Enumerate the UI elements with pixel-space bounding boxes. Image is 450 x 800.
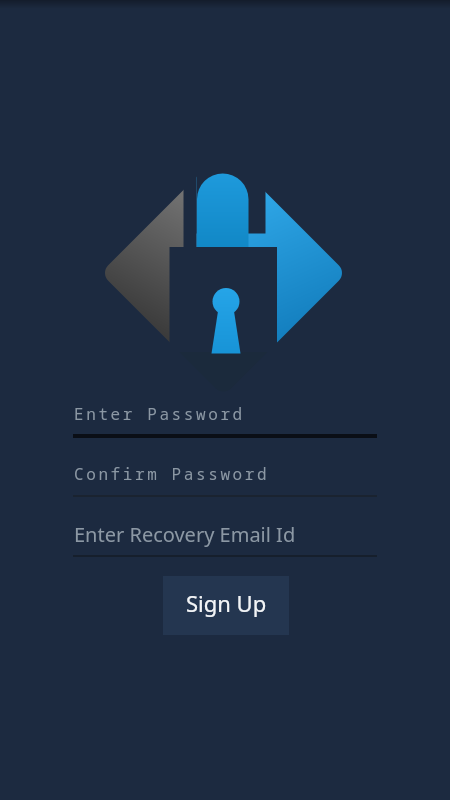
staticText: Enter Recovery Email Id [74, 521, 296, 548]
staticText: Sign Up [186, 588, 267, 618]
staticText: Enter Password [74, 403, 245, 425]
staticText: Confirm Password [74, 463, 270, 485]
button[interactable]: Enter Recovery Email Id [73, 516, 377, 557]
button[interactable]: Sign Up [163, 576, 289, 635]
button[interactable]: Enter Password [73, 396, 377, 438]
button[interactable]: Confirm Password [73, 456, 377, 497]
